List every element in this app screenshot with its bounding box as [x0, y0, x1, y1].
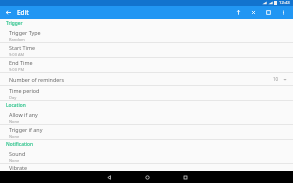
- staticText: None: [9, 134, 20, 139]
- staticText: Edit: [17, 8, 29, 17]
- staticText: Location: [6, 102, 26, 109]
- staticText: Notification: [6, 141, 33, 148]
- staticText: 10: [273, 76, 279, 82]
- button[interactable]: Vibrate: [0, 164, 293, 171]
- staticText: Random: [9, 37, 25, 42]
- staticText: Sound: [9, 150, 26, 157]
- button[interactable]: Undo: [231, 6, 246, 19]
- button[interactable]: Back: [90, 171, 128, 183]
- staticText: Allow if any: [9, 111, 38, 118]
- staticText: 12:43: [279, 0, 290, 6]
- button[interactable]: Recent apps: [166, 171, 204, 183]
- staticText: Trigger Type: [9, 29, 41, 36]
- button[interactable]: Trigger Type: [0, 28, 293, 42]
- staticText: Trigger: [6, 20, 23, 27]
- button[interactable]: Discard: [246, 6, 261, 19]
- button[interactable]: Save: [261, 6, 276, 19]
- staticText: None: [9, 119, 20, 124]
- button[interactable]: Home: [128, 171, 166, 183]
- staticText: Day: [9, 95, 17, 100]
- button[interactable]: Number of reminders: [0, 73, 293, 85]
- staticText: None: [9, 158, 20, 163]
- button[interactable]: Allow if any: [0, 110, 293, 124]
- button[interactable]: Sound: [0, 149, 293, 163]
- button[interactable]: Navigate up: [0, 6, 17, 19]
- button[interactable]: Start Time: [0, 43, 293, 57]
- button[interactable]: More options: [276, 6, 291, 19]
- staticText: Time period: [9, 87, 40, 94]
- staticText: Vibrate: [9, 164, 28, 171]
- staticText: 9:00 PM: [9, 67, 25, 72]
- staticText: 9:00 AM: [9, 52, 25, 57]
- button[interactable]: Trigger if any: [0, 125, 293, 139]
- button[interactable]: End Time: [0, 58, 293, 72]
- button[interactable]: Time period: [0, 86, 293, 100]
- staticText: Trigger if any: [9, 126, 43, 133]
- staticText: Number of reminders: [9, 76, 65, 83]
- staticText: Start Time: [9, 44, 35, 51]
- staticText: End Time: [9, 59, 33, 66]
